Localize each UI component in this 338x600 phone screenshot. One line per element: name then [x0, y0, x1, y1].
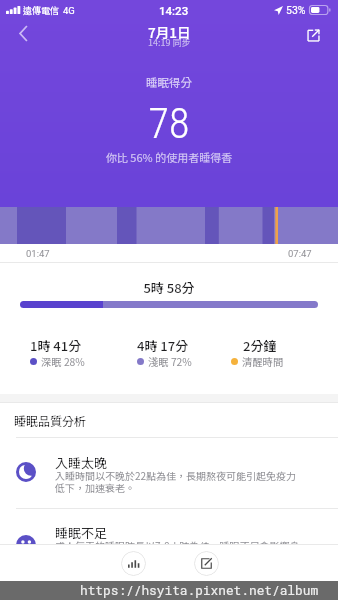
- button[interactable]: Statistics: [121, 551, 146, 576]
- staticText: 53%: [286, 4, 306, 16]
- staticText: 睡眠品質分析: [14, 412, 87, 429]
- staticText: 2分鐘: [243, 336, 277, 355]
- staticText: 14:23: [159, 4, 189, 17]
- staticText: 深眠 28%: [41, 354, 85, 369]
- staticText: 5時 58分: [0, 278, 338, 297]
- staticText: 4G: [63, 5, 75, 16]
- button[interactable]: Edit: [194, 551, 219, 576]
- button[interactable]: Share: [299, 21, 327, 49]
- staticText: 1時 41分: [30, 336, 82, 355]
- button[interactable]: 睡眠不足: [0, 508, 338, 578]
- button[interactable]: Back: [7, 20, 41, 54]
- staticText: 入睡太晚: [55, 453, 108, 472]
- staticText: https://hsyita.pixnet.net/album: [80, 582, 319, 599]
- staticText: 你比 56% 的使用者睡得香: [0, 149, 338, 165]
- staticText: 入睡時間以不晚於22點為佳，長期熬夜可能引起免疫力低下，加速衰老。: [55, 468, 300, 495]
- staticText: 78: [0, 99, 338, 148]
- staticText: 清醒時間: [242, 354, 284, 369]
- staticText: 01:47: [26, 248, 50, 259]
- staticText: 7月1日: [148, 22, 191, 42]
- staticText: 遠傳電信: [23, 4, 60, 17]
- button[interactable]: 入睡太晚: [0, 438, 338, 508]
- staticText: 4時 17分: [137, 336, 189, 355]
- staticText: 07:47: [288, 248, 312, 259]
- staticText: 淺眠 72%: [148, 354, 192, 369]
- staticText: 14:19 同步: [148, 36, 191, 49]
- staticText: 成人每天的睡眠時長以7-8小時為佳，睡眠不足會影響身體健康加速衰老。: [55, 538, 300, 565]
- staticText: 睡眠得分: [0, 74, 338, 91]
- staticText: 睡眠不足: [55, 523, 108, 542]
